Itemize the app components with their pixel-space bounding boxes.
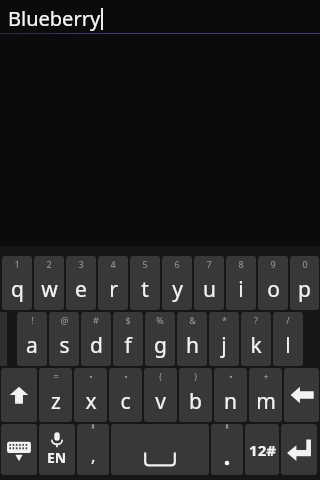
button[interactable]: 3	[66, 256, 96, 310]
button[interactable]: ,	[77, 424, 109, 475]
staticText: z	[51, 387, 61, 416]
staticText: b	[189, 387, 202, 416]
button[interactable]: %	[145, 312, 175, 366]
staticText: j	[221, 331, 227, 360]
button[interactable]: @	[49, 312, 79, 366]
button[interactable]: 1	[2, 256, 32, 310]
staticText: /	[286, 314, 290, 326]
staticText: *	[222, 314, 227, 326]
button[interactable]	[211, 424, 243, 475]
staticText: ,	[91, 444, 96, 467]
staticText: h	[186, 331, 199, 360]
button[interactable]: Space	[111, 424, 209, 475]
staticText: 5	[142, 258, 148, 270]
staticText: )	[194, 370, 197, 382]
staticText: m	[256, 387, 276, 416]
staticText: Blueberry	[8, 5, 101, 32]
staticText: p	[298, 275, 311, 304]
staticText: w	[41, 275, 58, 304]
staticText: •	[124, 370, 128, 382]
staticText: 3	[78, 258, 84, 270]
button[interactable]: •	[74, 368, 107, 422]
staticText: +	[263, 370, 269, 382]
button[interactable]: !	[17, 312, 47, 366]
staticText: 1	[14, 258, 20, 270]
button[interactable]: =	[39, 368, 72, 422]
staticText: EN	[47, 448, 67, 467]
staticText: r	[109, 275, 118, 304]
button[interactable]: )	[179, 368, 212, 422]
staticText: d	[90, 331, 103, 360]
staticText: e	[75, 275, 87, 304]
staticText: n	[224, 387, 237, 416]
staticText: c	[120, 387, 131, 416]
staticText: (	[159, 370, 162, 382]
button[interactable]: 12#	[245, 424, 279, 475]
staticText: 9	[270, 258, 276, 270]
button[interactable]: •	[214, 368, 247, 422]
button[interactable]: #	[81, 312, 111, 366]
staticText: 7	[206, 258, 212, 270]
staticText: t	[141, 275, 149, 304]
staticText: x	[85, 387, 97, 416]
button[interactable]: 7	[194, 256, 224, 310]
button[interactable]: 8	[226, 256, 256, 310]
button[interactable]: Shift	[1, 368, 37, 422]
button[interactable]: (	[144, 368, 177, 422]
staticText: f	[124, 331, 132, 360]
staticText: !	[31, 314, 34, 326]
staticText: $	[125, 314, 131, 326]
button[interactable]: •	[109, 368, 142, 422]
button[interactable]: Blueberry	[0, 0, 320, 36]
staticText: 12#	[249, 440, 276, 460]
staticText: v	[155, 387, 166, 416]
staticText: q	[11, 275, 24, 304]
staticText: •	[229, 370, 233, 382]
staticText: =	[53, 370, 59, 382]
button[interactable]: 5	[130, 256, 160, 310]
button[interactable]: Enter	[281, 424, 317, 475]
button[interactable]: +	[249, 368, 282, 422]
button[interactable]: *	[209, 312, 239, 366]
button[interactable]: Backspace	[284, 368, 319, 422]
staticText: g	[154, 331, 167, 360]
staticText: a	[26, 331, 38, 360]
button[interactable]: &	[177, 312, 207, 366]
staticText: &	[189, 314, 196, 326]
staticText: s	[59, 331, 70, 360]
button[interactable]: 4	[98, 256, 128, 310]
button[interactable]: /	[273, 312, 303, 366]
staticText: o	[267, 275, 280, 304]
button[interactable]: 0	[290, 256, 319, 310]
button[interactable]: ?	[241, 312, 271, 366]
staticText: 0	[302, 258, 308, 270]
button[interactable]: Voice input, English	[39, 424, 75, 475]
staticText: 8	[238, 258, 244, 270]
staticText: 2	[46, 258, 52, 270]
button[interactable]: 9	[258, 256, 288, 310]
staticText: y	[172, 275, 183, 304]
staticText: l	[285, 331, 291, 360]
staticText: k	[250, 331, 262, 360]
staticText: u	[203, 275, 216, 304]
button[interactable]: 2	[34, 256, 64, 310]
staticText: 6	[174, 258, 180, 270]
button[interactable]: 6	[162, 256, 192, 310]
staticText: •	[89, 370, 93, 382]
staticText: @	[60, 314, 69, 326]
staticText: %	[156, 314, 164, 326]
staticText: i	[238, 275, 244, 304]
button[interactable]: Hide keyboard	[1, 424, 37, 475]
staticText: #	[93, 314, 99, 326]
button[interactable]: $	[113, 312, 143, 366]
staticText: ?	[254, 314, 258, 326]
staticText: 4	[110, 258, 116, 270]
